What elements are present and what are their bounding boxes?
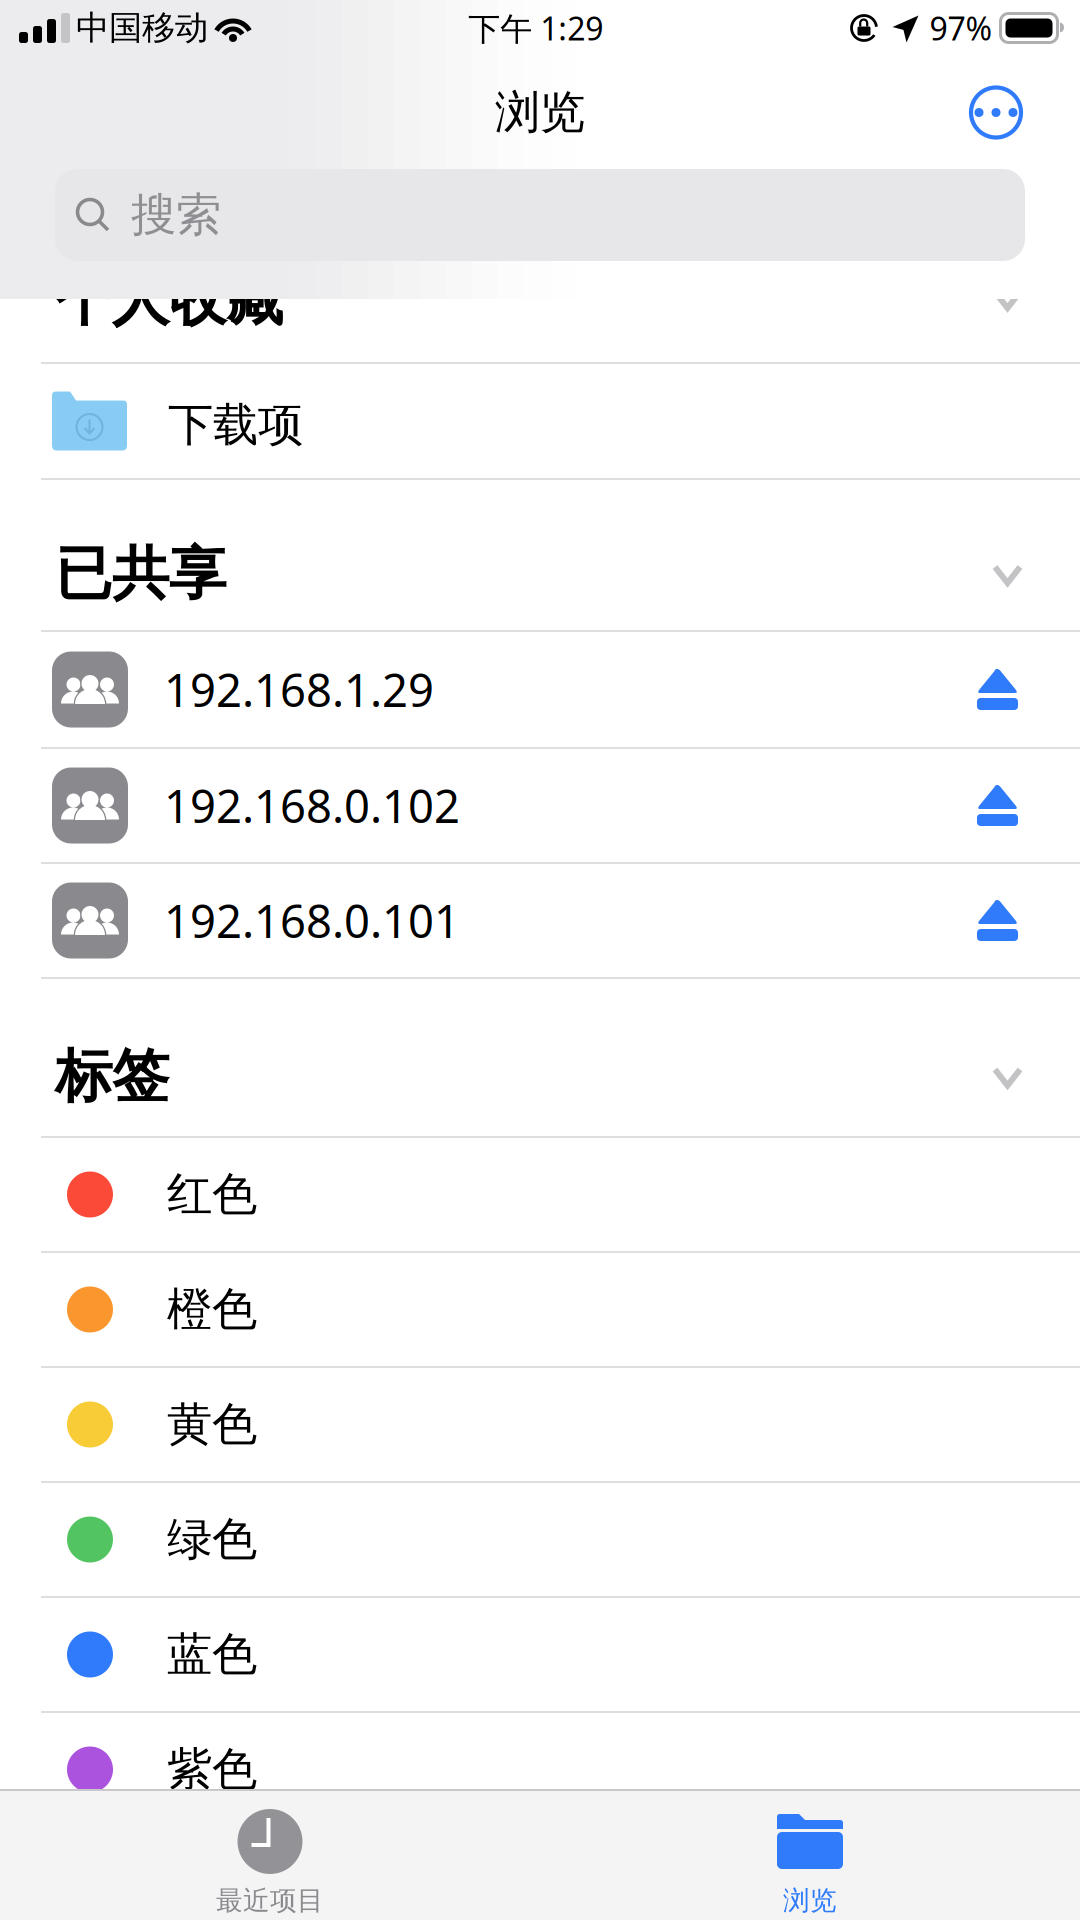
button[interactable]: 最近项目 bbox=[0, 1791, 540, 1920]
button[interactable]: 192.168.1.29 bbox=[0, 632, 1080, 747]
staticText: 192.168.0.101 bbox=[164, 890, 460, 951]
button[interactable]: 搜索 bbox=[55, 169, 1025, 261]
staticText: 蓝色 bbox=[167, 1627, 257, 1682]
staticText: 橙色 bbox=[167, 1282, 257, 1337]
staticText: 中国移动 bbox=[76, 7, 208, 48]
staticText: 标签 bbox=[55, 1041, 169, 1112]
staticText: 个人收藏 bbox=[55, 265, 283, 335]
staticText: 紫色 bbox=[167, 1742, 257, 1797]
staticText: 最近项目 bbox=[216, 1884, 324, 1917]
staticText: 下午 1:29 bbox=[468, 7, 603, 49]
button[interactable]: 红色 bbox=[0, 1138, 1080, 1251]
button[interactable]: 橙色 bbox=[0, 1253, 1080, 1366]
staticText: 下载项 bbox=[168, 397, 303, 453]
button[interactable]: 绿色 bbox=[0, 1483, 1080, 1596]
button[interactable]: 下载项 bbox=[0, 364, 1080, 478]
staticText: 192.168.1.29 bbox=[164, 659, 434, 720]
staticText: 97% bbox=[929, 7, 992, 49]
staticText: 已共享 bbox=[55, 539, 226, 609]
button[interactable]: 蓝色 bbox=[0, 1598, 1080, 1711]
button[interactable]: 192.168.0.101 bbox=[0, 864, 1080, 977]
staticText: 黄色 bbox=[167, 1397, 257, 1452]
staticText: 192.168.0.102 bbox=[164, 775, 460, 836]
staticText: 搜索 bbox=[131, 187, 221, 243]
staticText: 红色 bbox=[167, 1167, 257, 1222]
button[interactable]: 192.168.0.102 bbox=[0, 749, 1080, 862]
button[interactable]: Collapse 已共享 bbox=[972, 526, 1080, 584]
staticText: 绿色 bbox=[167, 1512, 257, 1567]
staticText: 浏览 bbox=[495, 85, 585, 140]
button[interactable]: 黄色 bbox=[0, 1368, 1080, 1481]
button[interactable]: More options bbox=[968, 84, 1024, 140]
button[interactable]: 紫色 bbox=[0, 1713, 1080, 1826]
button[interactable]: 浏览 bbox=[540, 1791, 1080, 1920]
staticText: 浏览 bbox=[783, 1884, 837, 1917]
button[interactable]: Collapse 标签 bbox=[972, 1028, 1080, 1086]
